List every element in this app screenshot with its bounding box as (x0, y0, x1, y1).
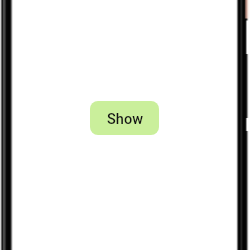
staticText: Show (107, 111, 143, 128)
button[interactable]: Show (90, 101, 159, 135)
